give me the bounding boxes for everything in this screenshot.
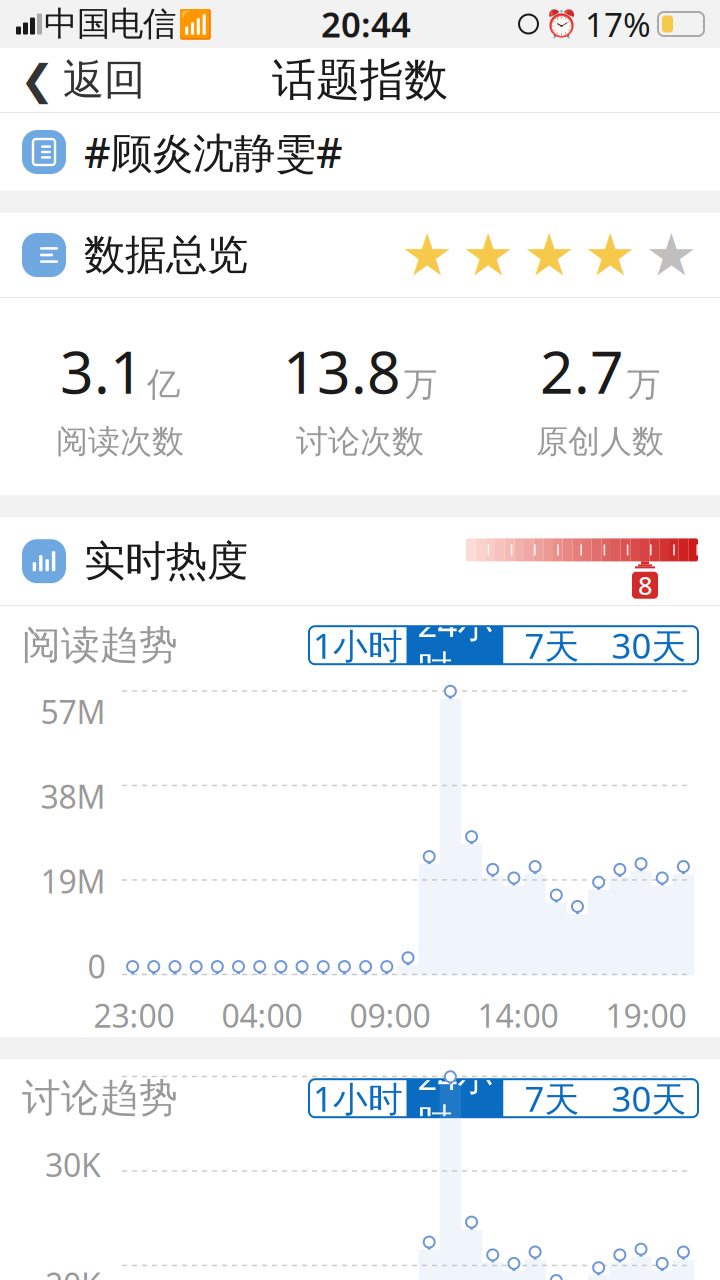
staticText: 亿 [147, 364, 180, 405]
staticText: 📶 [178, 8, 213, 40]
staticText: 7天 [524, 622, 579, 668]
button[interactable]: 24小时 [406, 1079, 503, 1117]
staticText: 数据总览 [84, 230, 248, 280]
staticText: ❮ [20, 56, 55, 103]
staticText: 万 [404, 364, 437, 405]
button[interactable]: ❮ [0, 48, 165, 112]
staticText: 2.7 [540, 332, 624, 410]
staticText: ★ [584, 222, 637, 288]
staticText: 阅读次数 [56, 422, 184, 461]
staticText: 讨论次数 [296, 422, 424, 461]
button[interactable]: 7天 [503, 626, 600, 664]
staticText: 23:00 [93, 994, 174, 1036]
staticText: 原创人数 [536, 422, 664, 461]
button[interactable]: 30天 [600, 1079, 697, 1117]
staticText: 04:00 [221, 994, 302, 1036]
button[interactable]: 24小时 [406, 626, 503, 664]
button[interactable]: 1小时 [309, 626, 406, 664]
staticText: 1小时 [313, 1075, 403, 1121]
staticText: 09:00 [349, 994, 430, 1036]
staticText: 17% [585, 2, 651, 46]
staticText: 话题指数 [272, 53, 448, 107]
staticText: #顾炎沈静雯# [84, 125, 343, 179]
staticText: 30天 [611, 622, 686, 668]
button[interactable]: #顾炎沈静雯# [0, 113, 720, 191]
button[interactable]: 7天 [503, 1079, 600, 1117]
staticText: ★ [523, 222, 576, 288]
staticText: 7天 [524, 1075, 579, 1121]
staticText: 1小时 [313, 622, 403, 668]
staticText: 0 [87, 945, 105, 987]
staticText: 阅读趋势 [22, 621, 178, 669]
staticText: 讨论趋势 [22, 1074, 178, 1122]
staticText: ★ [645, 222, 698, 288]
button[interactable]: 1小时 [309, 1079, 406, 1117]
staticText: 19:00 [605, 994, 686, 1036]
staticText: 8 [638, 568, 652, 602]
staticText: ★ [401, 222, 454, 288]
staticText: 中国电信 [44, 3, 176, 44]
staticText: 20:44 [321, 1, 411, 47]
staticText: 24小时 [417, 601, 492, 689]
staticText: 38M [40, 775, 105, 817]
staticText: 24小时 [417, 1054, 492, 1142]
staticText: 30K [45, 1143, 101, 1186]
staticText: 返回 [63, 55, 145, 105]
staticText: ★ [462, 222, 515, 288]
staticText: 万 [627, 364, 660, 405]
staticText: 14:00 [477, 994, 558, 1036]
staticText: 实时热度 [84, 536, 248, 587]
staticText: 13.8 [283, 332, 401, 410]
staticText: 30天 [611, 1075, 686, 1121]
staticText: 57M [40, 690, 105, 733]
staticText: 3.1 [60, 332, 144, 410]
staticText: ⏰ [545, 9, 578, 39]
staticText: 19M [40, 860, 105, 902]
staticText: 20K [45, 1263, 101, 1280]
button[interactable]: 30天 [600, 626, 697, 664]
